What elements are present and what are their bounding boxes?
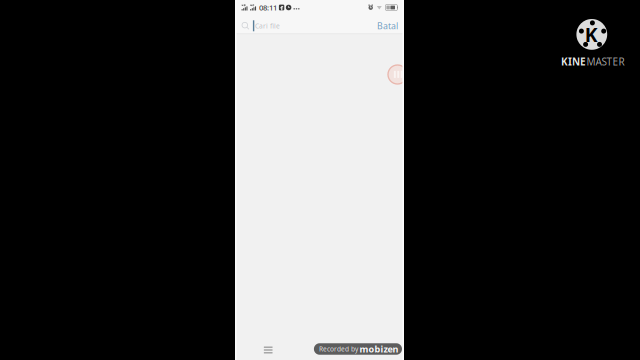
staticText: Recorded by [319,345,358,353]
button[interactable]: Cari file [241,19,377,33]
staticText: Batal [377,20,398,32]
staticText: MASTER [586,55,624,68]
button[interactable]: Batal [377,20,398,32]
staticText: mobizen [359,343,398,355]
staticText: Cari file [255,21,280,30]
button[interactable]: Recents [264,347,273,353]
staticText: K [585,21,598,48]
staticText: KINE [561,55,586,68]
staticText: 08:11 [259,2,277,13]
